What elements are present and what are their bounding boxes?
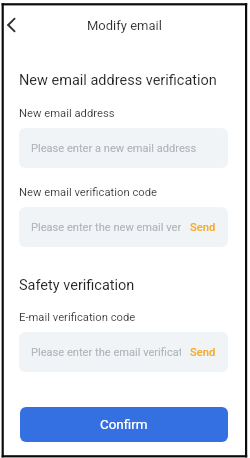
button[interactable]: Back <box>0 10 22 39</box>
button[interactable]: Please enter the email verification code <box>19 332 228 372</box>
staticText: Please enter the email verification code <box>31 346 181 359</box>
staticText: New email address verification <box>19 72 217 89</box>
staticText: New email verification code <box>19 186 158 199</box>
staticText: Please enter the new email verification … <box>31 221 181 234</box>
button[interactable]: Send <box>190 221 216 234</box>
staticText: Modify email <box>87 18 162 33</box>
staticText: E-mail verification code <box>19 311 136 324</box>
staticText: Safety verification <box>19 277 135 294</box>
staticText: Please enter a new email address <box>31 142 216 155</box>
button[interactable]: Please enter a new email address <box>19 128 228 168</box>
button[interactable]: Send <box>190 346 216 359</box>
button[interactable]: Please enter the new email verification … <box>19 207 228 247</box>
staticText: New email address <box>19 107 115 120</box>
staticText: Confirm <box>100 417 148 433</box>
button[interactable]: Confirm <box>20 407 228 442</box>
